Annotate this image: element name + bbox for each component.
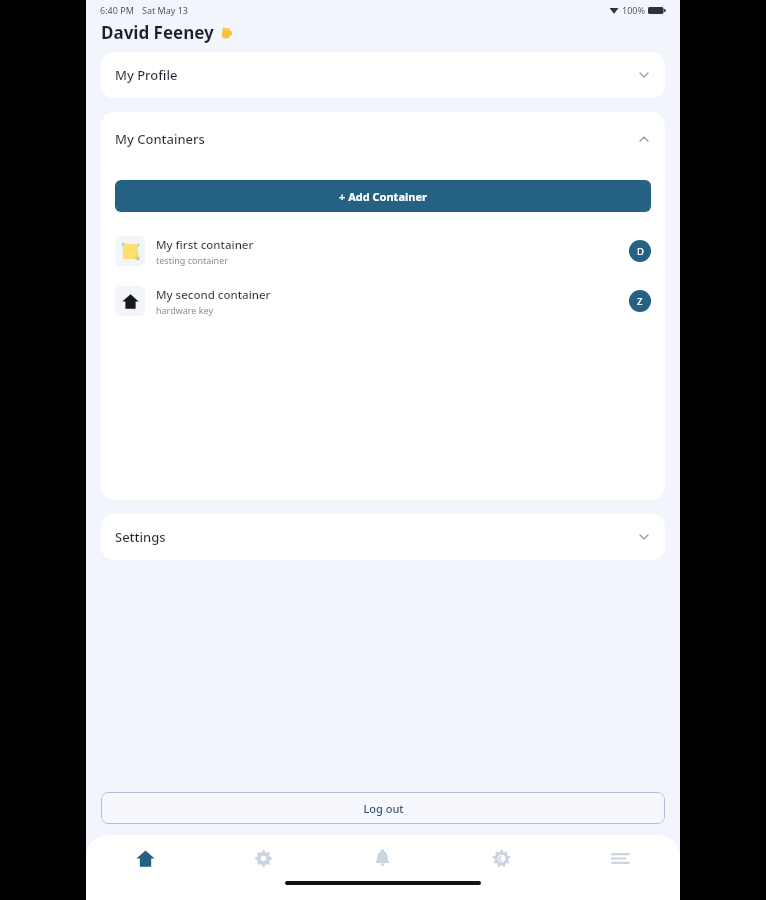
button[interactable]: My second container	[101, 282, 665, 320]
button[interactable]: Notifications	[323, 835, 442, 881]
staticText: Settings	[115, 528, 166, 546]
button[interactable]: My Containers	[101, 112, 665, 166]
button[interactable]: Settings	[204, 835, 323, 881]
button[interactable]: + Add Container	[115, 180, 651, 212]
staticText: + Add Container	[339, 189, 427, 204]
staticText: My Profile	[115, 66, 178, 84]
staticText: My second container	[156, 287, 271, 303]
staticText: 6:40 PM	[100, 4, 134, 16]
staticText: Log out	[363, 801, 404, 816]
button[interactable]: My Profile	[101, 52, 665, 98]
staticText: My Containers	[115, 130, 205, 148]
button[interactable]: Log out	[101, 792, 665, 824]
staticText: hardware key	[156, 304, 214, 316]
button[interactable]: Menu	[561, 835, 680, 881]
staticText: Sat May 13	[142, 4, 189, 16]
button[interactable]: My first container	[101, 232, 665, 270]
staticText: My first container	[156, 237, 254, 253]
button[interactable]: Home	[86, 835, 204, 881]
button[interactable]: Settings	[101, 514, 665, 560]
staticText: David Feeney	[101, 21, 214, 44]
staticText: 100%	[622, 4, 645, 16]
staticText: testing container	[156, 254, 228, 266]
staticText: Z	[637, 295, 643, 308]
button[interactable]: Brightness	[442, 835, 561, 881]
staticText: D	[637, 245, 644, 258]
